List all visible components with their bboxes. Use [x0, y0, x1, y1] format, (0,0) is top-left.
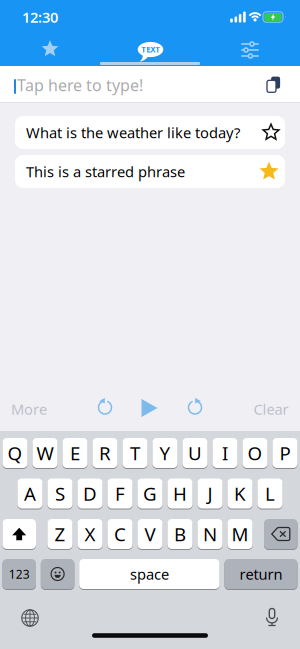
button[interactable]: [264, 519, 298, 550]
button[interactable]: [90, 392, 120, 422]
button[interactable]: [262, 75, 284, 97]
staticText: Q: [7, 441, 22, 465]
staticText: L: [265, 481, 275, 506]
button[interactable]: A: [17, 478, 43, 509]
staticText: F: [115, 481, 125, 506]
button[interactable]: [240, 41, 260, 59]
button[interactable]: TEXT: [137, 42, 163, 62]
button[interactable]: [30, 32, 70, 66]
button[interactable]: [41, 559, 74, 590]
button[interactable]: return: [224, 559, 298, 590]
staticText: R: [99, 441, 111, 465]
staticText: S: [55, 481, 65, 506]
button[interactable]: Q: [2, 438, 28, 469]
staticText: Z: [54, 522, 65, 546]
button[interactable]: Tap here to type!: [0, 66, 300, 102]
button[interactable]: L: [257, 478, 283, 509]
button[interactable]: C: [107, 519, 133, 550]
staticText: TEXT: [141, 44, 160, 55]
button[interactable]: [22, 610, 38, 626]
staticText: K: [234, 481, 246, 506]
staticText: space: [130, 564, 169, 584]
button[interactable]: [180, 392, 210, 422]
staticText: O: [247, 441, 262, 465]
button[interactable]: X: [77, 519, 103, 550]
button[interactable]: R: [92, 438, 118, 469]
staticText: D: [83, 481, 97, 506]
button[interactable]: I: [212, 438, 238, 469]
staticText: I: [222, 441, 228, 465]
staticText: M: [231, 522, 248, 546]
staticText: 123: [9, 566, 30, 582]
button[interactable]: What is the weather like today?: [15, 116, 285, 149]
button[interactable]: [265, 608, 279, 625]
button[interactable]: Y: [152, 438, 178, 469]
button[interactable]: H: [167, 478, 193, 509]
staticText: Y: [159, 441, 170, 465]
staticText: P: [279, 441, 290, 465]
button[interactable]: This is a starred phrase: [15, 155, 285, 188]
staticText: U: [188, 441, 202, 465]
staticText: This is a starred phrase: [26, 162, 185, 181]
button[interactable]: [2, 519, 36, 550]
button[interactable]: 123: [2, 559, 36, 590]
button[interactable]: space: [79, 559, 220, 590]
button[interactable]: F: [107, 478, 133, 509]
staticText: More: [11, 399, 47, 419]
button[interactable]: U: [182, 438, 208, 469]
staticText: Clear: [253, 399, 288, 419]
staticText: N: [203, 522, 217, 546]
staticText: J: [207, 481, 212, 506]
button[interactable]: G: [137, 478, 163, 509]
staticText: return: [239, 564, 282, 584]
staticText: What is the weather like today?: [26, 123, 240, 142]
button[interactable]: P: [272, 438, 298, 469]
button[interactable]: Clear: [249, 394, 293, 424]
button[interactable]: B: [167, 519, 193, 550]
button[interactable]: N: [197, 519, 223, 550]
button[interactable]: [141, 399, 157, 417]
staticText: C: [114, 522, 126, 546]
button[interactable]: K: [227, 478, 253, 509]
staticText: G: [143, 481, 157, 506]
button[interactable]: J: [197, 478, 223, 509]
staticText: H: [173, 481, 187, 506]
staticText: T: [130, 441, 140, 465]
staticText: 12:30: [22, 7, 58, 27]
button[interactable]: T: [122, 438, 148, 469]
button[interactable]: V: [137, 519, 163, 550]
button[interactable]: D: [77, 478, 103, 509]
staticText: Tap here to type!: [17, 74, 143, 96]
staticText: B: [174, 522, 186, 546]
button[interactable]: E: [62, 438, 88, 469]
staticText: X: [84, 522, 95, 546]
staticText: W: [36, 441, 53, 465]
button[interactable]: M: [227, 519, 253, 550]
button[interactable]: More: [7, 394, 51, 424]
staticText: V: [144, 522, 155, 546]
staticText: E: [70, 441, 80, 465]
staticText: A: [24, 481, 36, 506]
button[interactable]: Z: [47, 519, 73, 550]
button[interactable]: W: [32, 438, 58, 469]
button[interactable]: S: [47, 478, 73, 509]
button[interactable]: O: [242, 438, 268, 469]
